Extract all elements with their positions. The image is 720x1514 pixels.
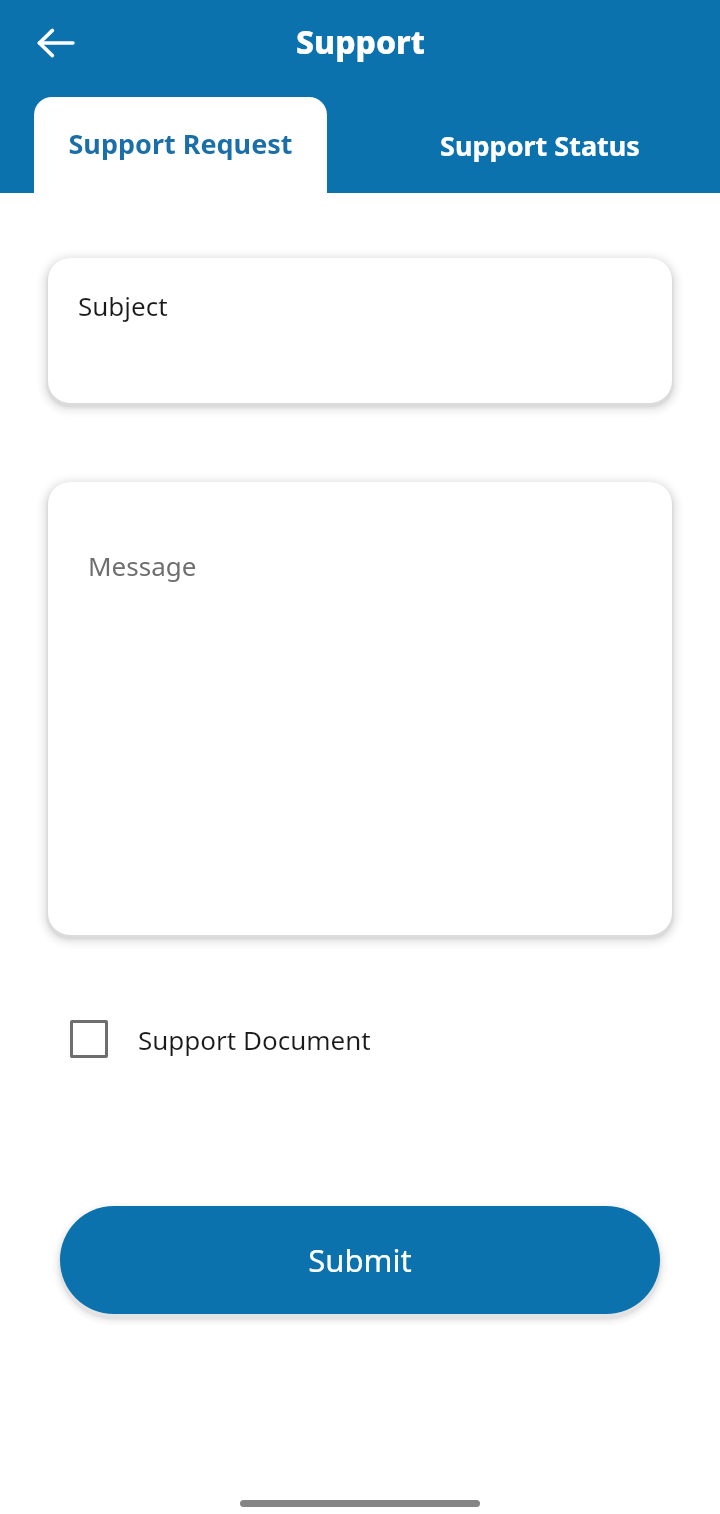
button[interactable]: Submit [60, 1206, 660, 1314]
staticText: Submit [308, 1239, 412, 1281]
button[interactable]: Support Document [60, 1008, 371, 1070]
button[interactable]: Subject [48, 258, 672, 403]
staticText: Support Status [440, 127, 640, 164]
staticText: Message [88, 548, 197, 583]
button[interactable]: Support Request [34, 97, 327, 193]
button[interactable]: Message [48, 482, 672, 935]
staticText: Support Document [138, 1022, 371, 1057]
staticText: Support Request [68, 125, 293, 162]
staticText: Support [296, 20, 425, 64]
button[interactable]: Support Status [360, 97, 720, 193]
staticText: Subject [78, 288, 168, 323]
button[interactable]: Back [22, 9, 90, 77]
